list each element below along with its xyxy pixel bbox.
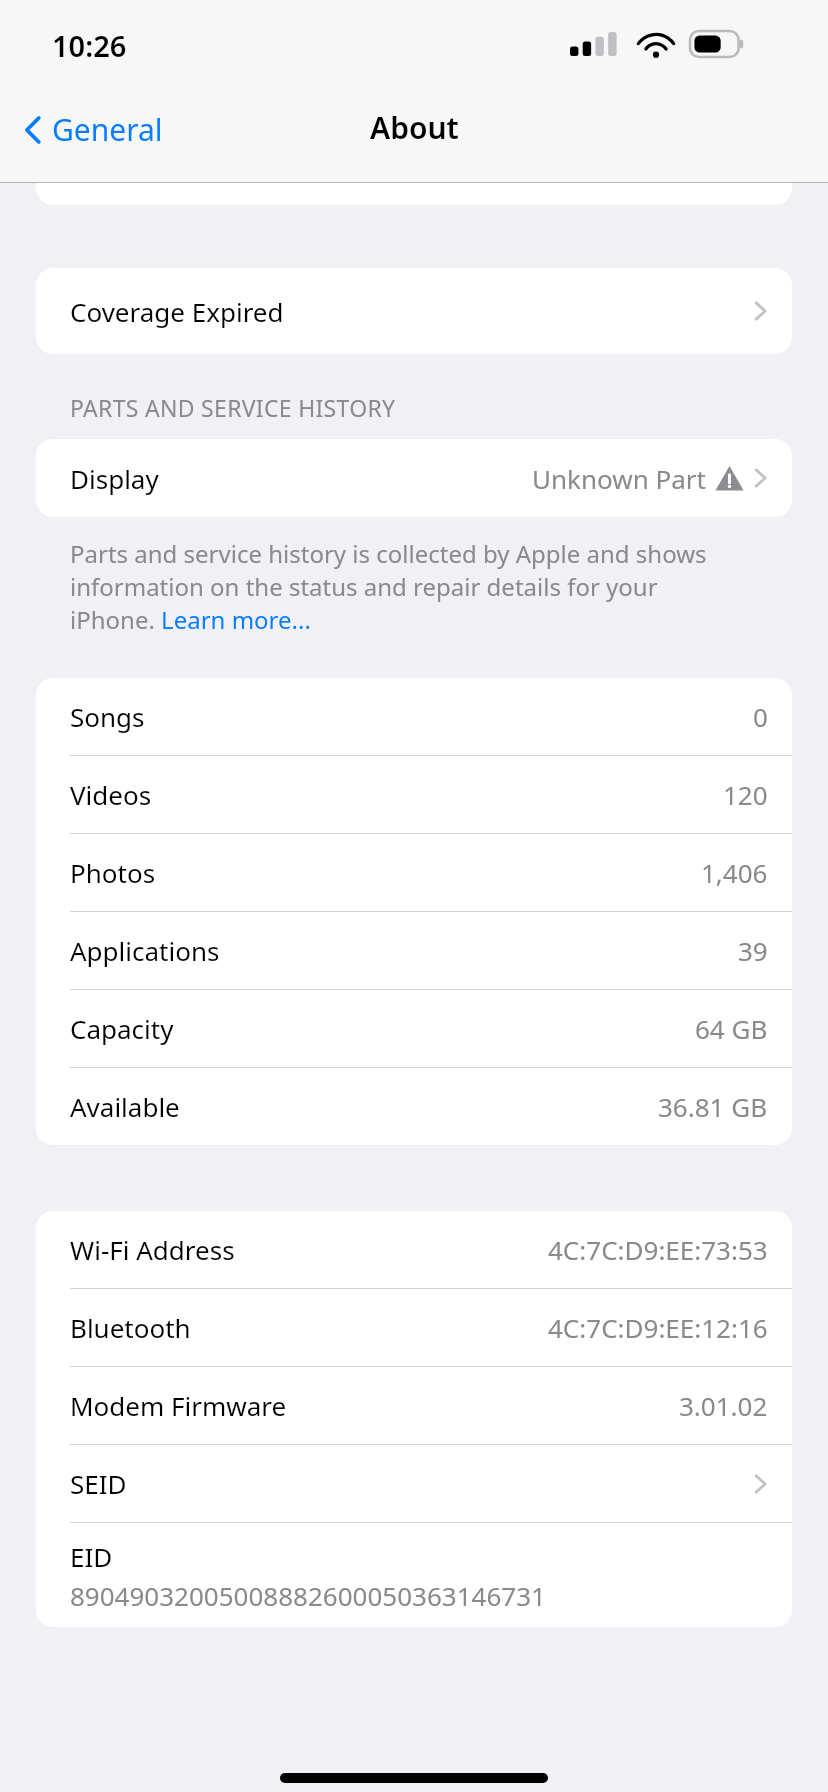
- staticText: Parts and service history is collected b…: [70, 537, 728, 636]
- button[interactable]: Photos: [36, 834, 792, 911]
- button[interactable]: Bluetooth: [36, 1289, 792, 1366]
- button[interactable]: Songs: [36, 678, 792, 755]
- staticText: 120: [723, 777, 768, 812]
- staticText: Bluetooth: [70, 1310, 191, 1345]
- staticText: Unknown Part: [532, 461, 706, 496]
- staticText: 0: [753, 699, 768, 734]
- staticText: 64 GB: [695, 1011, 768, 1046]
- staticText: 1,406: [701, 855, 768, 890]
- button[interactable]: SEID: [36, 1445, 792, 1522]
- staticText: SEID: [70, 1466, 127, 1501]
- staticText: Videos: [70, 777, 152, 812]
- button[interactable]: Coverage Expired: [36, 268, 792, 354]
- staticText: 4C:7C:D9:EE:73:53: [548, 1232, 768, 1267]
- staticText: Songs: [70, 699, 145, 734]
- button[interactable]: Applications: [36, 912, 792, 989]
- staticText: Photos: [70, 855, 156, 890]
- staticText: Capacity: [70, 1011, 174, 1046]
- button[interactable]: EID: [36, 1523, 792, 1627]
- staticText: 36.81 GB: [658, 1089, 768, 1124]
- staticText: Display: [70, 461, 159, 496]
- staticText: General: [52, 109, 163, 150]
- staticText: Coverage Expired: [70, 294, 284, 329]
- staticText: 3.01.02: [679, 1388, 768, 1423]
- staticText: 10:26: [52, 26, 127, 65]
- staticText: 4C:7C:D9:EE:12:16: [548, 1310, 768, 1345]
- staticText: About: [370, 107, 459, 148]
- staticText: 89049032005008882600050363146731: [70, 1578, 546, 1613]
- staticText: Modem Firmware: [70, 1388, 287, 1423]
- staticText: PARTS AND SERVICE HISTORY: [70, 392, 396, 423]
- button[interactable]: General: [12, 103, 175, 155]
- button[interactable]: Display: [36, 439, 792, 517]
- button[interactable]: Wi-Fi Address: [36, 1211, 792, 1288]
- button[interactable]: Available: [36, 1068, 792, 1145]
- staticText: EID: [70, 1539, 113, 1574]
- button[interactable]: Modem Firmware: [36, 1367, 792, 1444]
- staticText: Wi-Fi Address: [70, 1232, 235, 1267]
- button[interactable]: Videos: [36, 756, 792, 833]
- button[interactable]: Capacity: [36, 990, 792, 1067]
- staticText: Applications: [70, 933, 220, 968]
- staticText: Available: [70, 1089, 180, 1124]
- staticText: 39: [738, 933, 768, 968]
